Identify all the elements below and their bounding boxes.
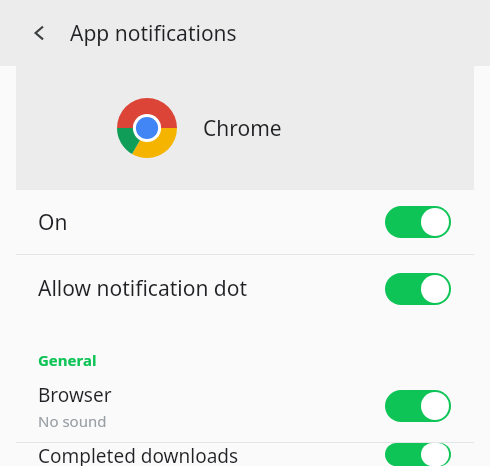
staticText: On (38, 208, 68, 237)
staticText: No sound (38, 411, 107, 431)
button[interactable]: Completed downloads (0, 443, 490, 466)
staticText: Chrome (203, 114, 282, 143)
button[interactable]: Back (20, 13, 60, 53)
button[interactable]: Toggle (385, 273, 451, 305)
staticText: Allow notification dot (38, 274, 248, 303)
button[interactable]: Toggle (385, 206, 451, 238)
button[interactable]: Allow notification dot (0, 255, 490, 322)
staticText: App notifications (70, 19, 237, 48)
button[interactable]: Browser (0, 370, 490, 442)
staticText: Browser (38, 382, 112, 408)
staticText: General (38, 350, 97, 370)
button[interactable]: On (0, 190, 490, 254)
button[interactable]: Toggle (385, 390, 451, 422)
staticText: Completed downloads (38, 443, 239, 466)
button[interactable]: Toggle (385, 443, 451, 466)
